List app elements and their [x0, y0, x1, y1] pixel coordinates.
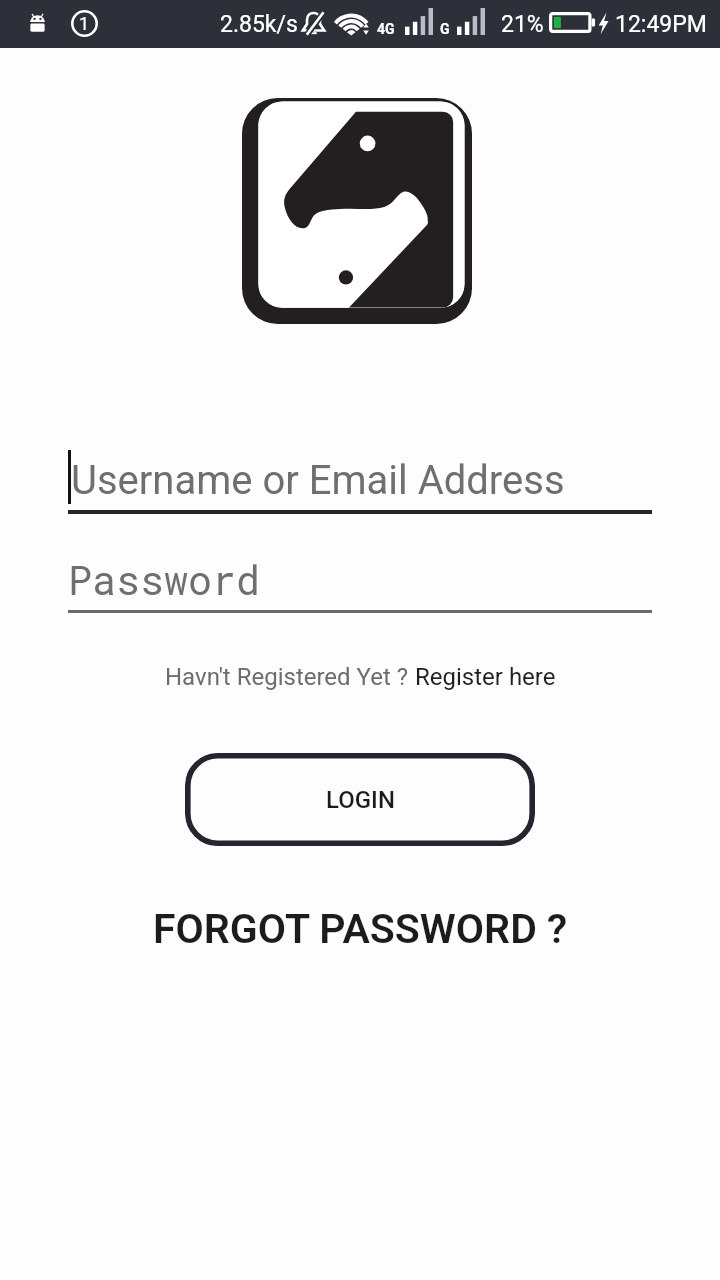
staticText: 1	[79, 13, 90, 34]
staticText: LOGIN	[326, 786, 395, 814]
staticText: G	[440, 21, 450, 37]
staticText: 21%	[501, 11, 544, 38]
staticText: Havn't Registered Yet ?	[165, 663, 415, 691]
button[interactable]: Username or Email Address	[68, 450, 652, 514]
staticText: Register here	[415, 663, 556, 691]
button[interactable]: Register here	[415, 663, 556, 691]
staticText: Username or Email Address	[71, 457, 565, 504]
other: App logo	[242, 98, 472, 324]
button[interactable]: FORGOT PASSWORD ?	[153, 905, 568, 953]
staticText: FORGOT PASSWORD ?	[153, 905, 568, 953]
button[interactable]: LOGIN	[185, 753, 535, 846]
staticText: 2.85k/s	[220, 11, 298, 38]
staticText: 12:49PM	[615, 11, 707, 38]
button[interactable]: Password	[68, 553, 652, 613]
staticText: Password	[68, 553, 261, 606]
staticText: 4G	[377, 21, 395, 37]
